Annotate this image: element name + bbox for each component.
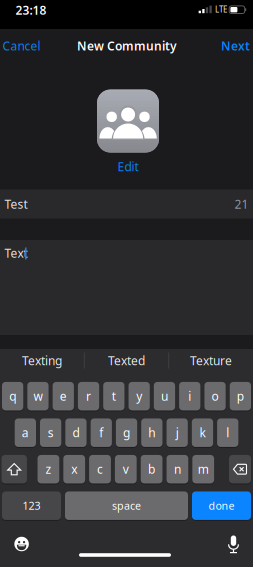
staticText: r [86, 388, 91, 404]
button[interactable]: z [37, 455, 59, 483]
staticText: w [33, 388, 42, 404]
staticText: a [22, 425, 29, 441]
staticText: space [112, 499, 141, 513]
staticText: 21 [234, 196, 248, 212]
staticText: Texting [22, 352, 62, 368]
staticText: q [9, 388, 16, 404]
staticText: z [45, 461, 51, 477]
staticText: g [123, 425, 130, 441]
staticText: s [48, 425, 54, 441]
staticText: v [123, 461, 129, 477]
staticText: LTE [215, 4, 227, 15]
button[interactable]: Next [221, 38, 250, 54]
button[interactable]: e [53, 382, 74, 410]
button[interactable]: r [78, 382, 99, 410]
staticText: n [174, 461, 181, 477]
button[interactable]: Delete [229, 455, 251, 483]
staticText: x [71, 461, 77, 477]
button[interactable]: v [115, 455, 137, 483]
button[interactable]: a [15, 418, 36, 447]
staticText: y [136, 388, 142, 404]
button[interactable]: s [40, 418, 61, 447]
button[interactable]: Texting [2, 347, 82, 373]
staticText: o [212, 388, 219, 404]
staticText: done [208, 499, 234, 513]
button[interactable]: j [166, 418, 188, 447]
staticText: h [148, 425, 155, 441]
button[interactable]: done [192, 491, 251, 520]
staticText: c [97, 461, 103, 477]
button[interactable]: Community name, Test [0, 189, 253, 218]
button[interactable]: o [204, 382, 226, 410]
button[interactable]: Description, Text [0, 240, 253, 335]
button[interactable]: u [154, 382, 175, 410]
staticText: 123 [22, 499, 40, 513]
staticText: Next [221, 38, 250, 54]
button[interactable]: t [103, 382, 124, 410]
button[interactable]: x [63, 455, 85, 483]
button[interactable]: Numbers [2, 491, 61, 520]
staticText: Edit [117, 158, 138, 174]
button[interactable]: k [192, 418, 213, 447]
staticText: m [198, 461, 209, 477]
staticText: Cancel [2, 38, 40, 54]
button[interactable]: g [116, 418, 137, 447]
button[interactable]: d [65, 418, 87, 447]
button[interactable]: Shift [1, 455, 27, 483]
staticText: Texture [190, 352, 232, 368]
button[interactable]: Edit community photo [97, 89, 159, 174]
staticText: Text [4, 245, 27, 261]
button[interactable]: space [65, 491, 188, 520]
button[interactable]: Dictation [226, 535, 240, 554]
button[interactable]: n [166, 455, 188, 483]
button[interactable]: Texture [171, 347, 251, 373]
button[interactable]: b [141, 455, 162, 483]
button[interactable]: Emoji [14, 537, 29, 551]
staticText: Test [4, 196, 27, 212]
staticText: k [199, 425, 205, 441]
staticText: e [60, 388, 67, 404]
staticText: l [226, 425, 229, 441]
staticText: p [237, 388, 244, 404]
staticText: t [112, 388, 116, 404]
button[interactable]: l [217, 418, 238, 447]
button[interactable]: q [2, 382, 23, 410]
staticText: d [72, 425, 79, 441]
staticText: f [99, 425, 103, 441]
staticText: u [161, 388, 168, 404]
button[interactable]: w [27, 382, 49, 410]
staticText: Texted [108, 352, 145, 368]
button[interactable]: i [179, 382, 200, 410]
button[interactable]: Texted [86, 347, 166, 373]
button[interactable]: Cancel [2, 38, 40, 54]
button[interactable]: f [91, 418, 112, 447]
button[interactable]: c [89, 455, 111, 483]
button[interactable]: p [230, 382, 251, 410]
button[interactable]: h [141, 418, 162, 447]
staticText: b [148, 461, 155, 477]
staticText: New Community [77, 38, 177, 54]
staticText: i [188, 388, 191, 404]
staticText: j [176, 425, 179, 441]
button[interactable]: m [192, 455, 214, 483]
button[interactable]: y [128, 382, 150, 410]
staticText: 23:18 [15, 2, 46, 18]
